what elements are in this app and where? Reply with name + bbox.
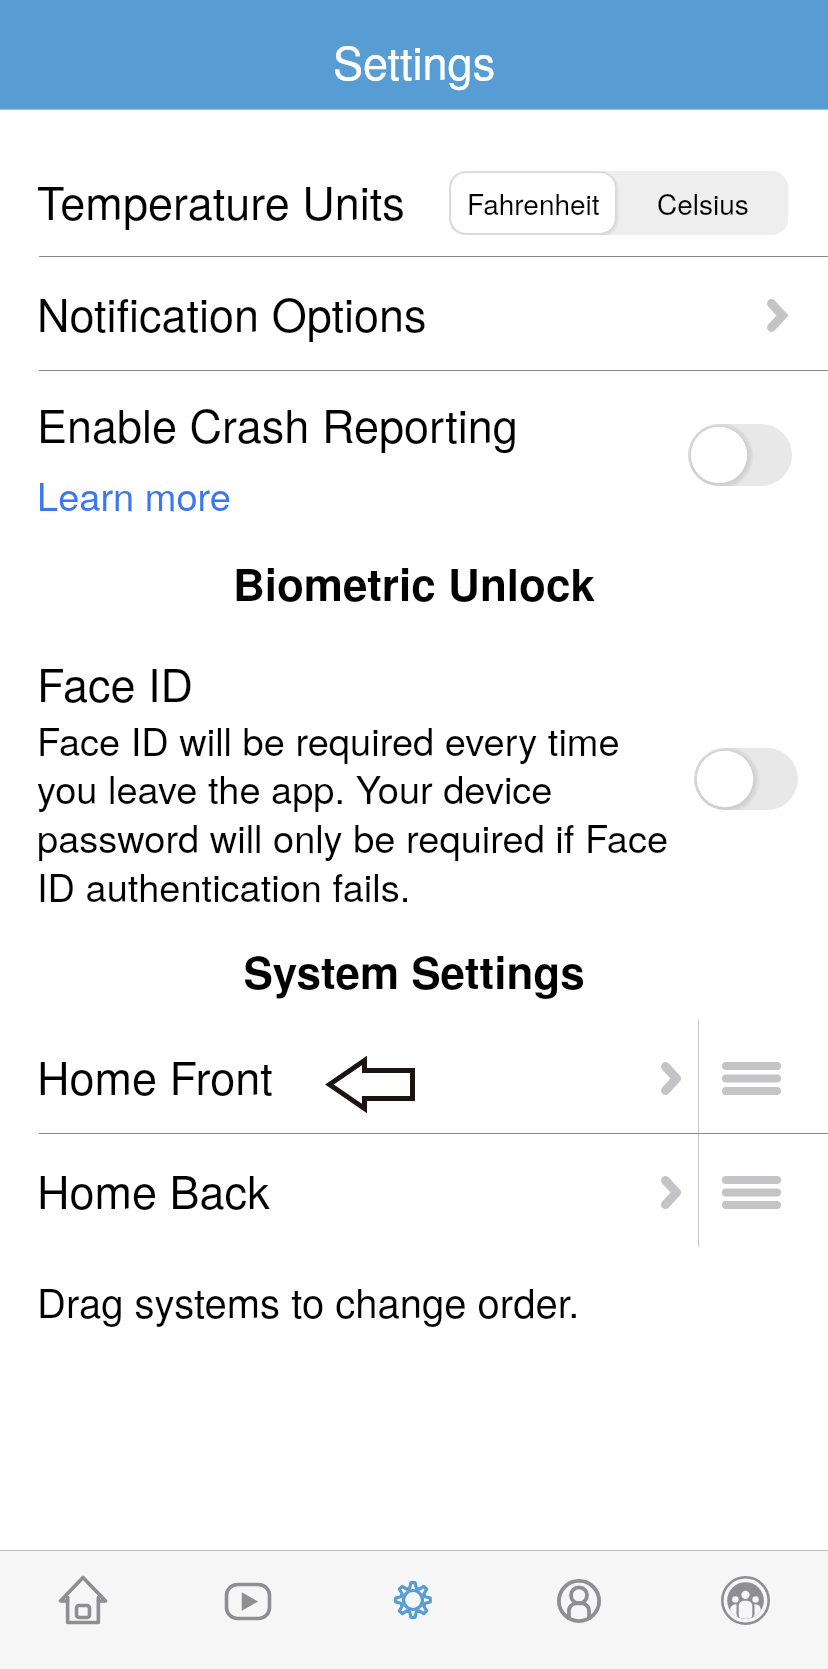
staticText: Face ID — [37, 650, 193, 714]
staticText: Face ID will be required every time you … — [37, 712, 685, 913]
staticText: Enable Crash Reporting — [37, 391, 518, 455]
staticText: Drag systems to change order. — [37, 1272, 580, 1329]
button[interactable]: Home Front — [0, 1020, 828, 1133]
staticText: Notification Options — [37, 280, 427, 344]
button[interactable]: Celsius — [617, 171, 788, 235]
button[interactable]: Learn more — [37, 467, 231, 521]
button[interactable]: Notification Options — [0, 257, 828, 370]
button[interactable]: Profile — [496, 1550, 662, 1669]
button[interactable]: Enable Crash Reporting — [688, 424, 792, 486]
other: Reorder — [722, 1176, 781, 1209]
staticText: Biometric Unlock — [0, 551, 828, 614]
button[interactable]: Face ID — [694, 748, 798, 810]
staticText: Learn more — [37, 467, 231, 521]
staticText: Temperature Units — [37, 168, 405, 232]
button[interactable]: Settings — [330, 1550, 496, 1669]
other: Move left — [327, 1058, 417, 1113]
staticText: System Settings — [0, 939, 828, 1002]
staticText: Home Front — [37, 1043, 273, 1107]
staticText: Celsius — [657, 183, 749, 223]
button[interactable]: Fahrenheit — [451, 173, 615, 233]
button[interactable]: Groups — [662, 1550, 828, 1669]
staticText: Settings — [333, 28, 496, 92]
button[interactable]: Home Back — [0, 1134, 828, 1247]
other: Reorder — [722, 1062, 781, 1095]
staticText: Home Back — [37, 1157, 270, 1221]
button[interactable]: Video — [165, 1550, 330, 1669]
staticText: Fahrenheit — [467, 183, 600, 223]
button[interactable]: Home — [0, 1550, 165, 1669]
